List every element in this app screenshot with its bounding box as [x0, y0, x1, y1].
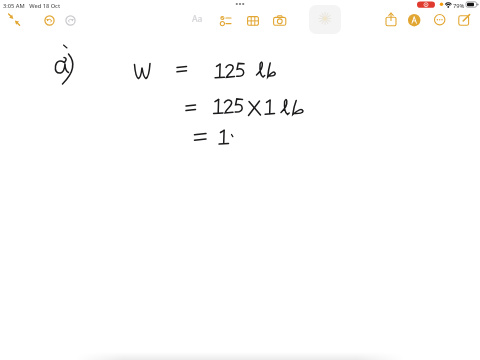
button[interactable] — [309, 5, 341, 34]
staticText: 3:05 AM Wed 18 Oct — [3, 2, 61, 10]
button[interactable] — [458, 14, 471, 26]
button[interactable] — [7, 13, 21, 26]
button[interactable] — [434, 14, 446, 26]
staticText: 79% — [453, 2, 465, 10]
button[interactable] — [408, 14, 421, 27]
button[interactable] — [44, 15, 55, 26]
button[interactable] — [385, 12, 397, 27]
button[interactable] — [219, 15, 233, 26]
button[interactable]: Aa — [192, 13, 208, 26]
button[interactable] — [273, 15, 287, 26]
button[interactable] — [247, 16, 259, 26]
staticText: Aa — [192, 13, 203, 25]
button[interactable] — [65, 15, 76, 26]
